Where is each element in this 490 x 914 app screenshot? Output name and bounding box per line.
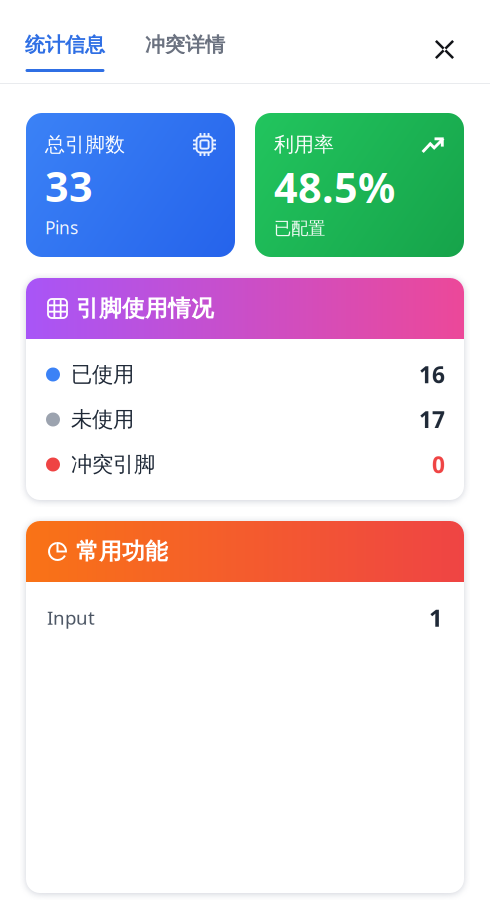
staticText: 统计信息 [25,32,105,57]
button[interactable]: 统计信息 [0,32,125,83]
staticText: 已配置 [274,218,325,239]
staticText: Pins [45,216,78,239]
staticText: 已使用 [71,361,134,388]
staticText: 冲突引脚 [71,451,155,478]
staticText: 1 [429,602,443,633]
staticText: 引脚使用情况 [76,295,214,322]
staticText: Input [47,605,95,630]
staticText: 总引脚数 [45,132,125,157]
staticText: 常用功能 [76,538,168,565]
staticText: 17 [419,404,445,434]
button[interactable]: 冲突详情 [125,32,245,83]
staticText: 未使用 [71,406,134,433]
staticText: 16 [419,359,445,389]
staticText: 48.5% [274,159,395,214]
staticText: 冲突详情 [145,32,225,57]
button[interactable]: Close [413,40,490,83]
staticText: 0 [432,449,445,479]
staticText: 33 [45,158,93,213]
staticText: 利用率 [274,132,334,157]
